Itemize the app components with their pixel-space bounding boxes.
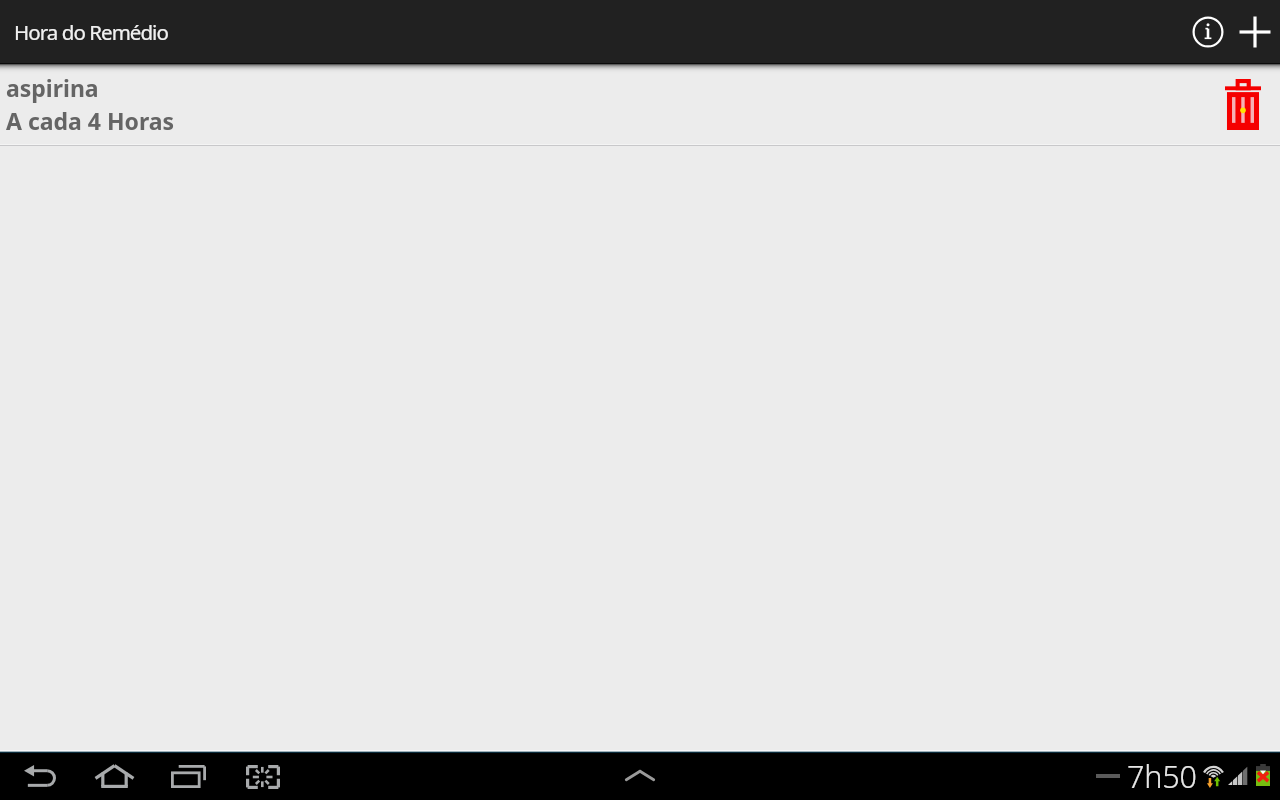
button[interactable]: Excluir xyxy=(1207,64,1279,145)
button[interactable]: Screenshot xyxy=(231,753,295,800)
button[interactable]: Expandir xyxy=(610,752,670,799)
staticText: 7h50 xyxy=(1127,755,1197,797)
button[interactable]: Adicionar xyxy=(1231,8,1279,56)
button[interactable]: Sobre xyxy=(1184,8,1232,56)
button[interactable]: aspirina xyxy=(0,64,1280,145)
staticText: Hora do Remédio xyxy=(14,18,168,46)
button[interactable]: Back xyxy=(8,752,72,799)
staticText: A cada 4 Horas xyxy=(6,105,175,136)
button[interactable]: Home xyxy=(82,752,146,799)
staticText: aspirina xyxy=(6,72,99,103)
button[interactable]: Recents xyxy=(156,753,220,800)
